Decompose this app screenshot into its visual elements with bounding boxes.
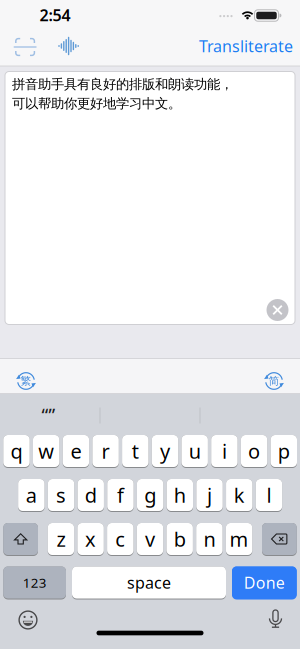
- button[interactable]: Delete: [262, 523, 297, 556]
- staticText: g: [144, 482, 156, 508]
- staticText: d: [85, 482, 97, 508]
- staticText: 123: [23, 574, 47, 591]
- staticText: s: [56, 482, 66, 508]
- button[interactable]: Scan text: [13, 36, 37, 58]
- button[interactable]: m: [226, 523, 252, 556]
- button[interactable]: Shift: [3, 523, 38, 556]
- button[interactable]: j: [196, 479, 223, 512]
- button[interactable]: 123: [3, 566, 66, 599]
- button[interactable]: Read aloud: [58, 35, 80, 57]
- button[interactable]: x: [77, 523, 104, 556]
- staticText: y: [160, 438, 170, 464]
- staticText: k: [234, 482, 245, 508]
- staticText: z: [56, 526, 65, 552]
- button[interactable]: n: [196, 523, 223, 556]
- staticText: u: [189, 438, 201, 464]
- staticText: q: [10, 438, 22, 464]
- button[interactable]: y: [152, 435, 178, 468]
- staticText: e: [70, 438, 81, 464]
- staticText: 繁: [20, 374, 31, 387]
- staticText: j: [207, 482, 212, 508]
- button[interactable]: s: [48, 479, 74, 512]
- staticText: “”: [41, 403, 55, 426]
- button[interactable]: o: [241, 435, 267, 468]
- staticText: l: [266, 482, 271, 508]
- button[interactable]: “”: [41, 403, 55, 426]
- staticText: r: [102, 438, 110, 464]
- button[interactable]: p: [271, 435, 297, 468]
- button[interactable]: w: [33, 435, 59, 468]
- staticText: n: [203, 526, 215, 552]
- button[interactable]: t: [122, 435, 148, 468]
- staticText: 拼音助手具有良好的排版和朗读功能， 可以帮助你更好地学习中文。: [12, 76, 233, 112]
- button[interactable]: a: [18, 479, 44, 512]
- staticText: m: [230, 526, 249, 552]
- staticText: v: [145, 526, 155, 552]
- button[interactable]: e: [63, 435, 89, 468]
- button[interactable]: Emoji: [17, 609, 38, 630]
- staticText: w: [38, 438, 54, 464]
- staticText: Done: [244, 572, 285, 593]
- button[interactable]: g: [137, 479, 163, 512]
- button[interactable]: Dictate: [268, 609, 282, 629]
- button[interactable]: i: [211, 435, 238, 468]
- staticText: f: [117, 482, 124, 508]
- staticText: o: [248, 438, 260, 464]
- button[interactable]: h: [167, 479, 193, 512]
- button[interactable]: c: [107, 523, 133, 556]
- button[interactable]: u: [181, 435, 208, 468]
- button[interactable]: q: [3, 435, 30, 468]
- button[interactable]: b: [166, 523, 193, 556]
- button[interactable]: Convert to Simplified: [261, 368, 287, 394]
- staticText: b: [174, 526, 186, 552]
- staticText: c: [115, 526, 125, 552]
- button[interactable]: v: [137, 523, 163, 556]
- button[interactable]: d: [77, 479, 104, 512]
- button[interactable]: z: [48, 523, 74, 556]
- staticText: t: [132, 438, 139, 464]
- staticText: x: [85, 526, 96, 552]
- staticText: p: [278, 438, 290, 464]
- button[interactable]: r: [92, 435, 119, 468]
- button[interactable]: Clear text: [266, 299, 288, 321]
- staticText: Transliterate: [199, 35, 293, 57]
- staticText: h: [174, 482, 186, 508]
- staticText: space: [127, 572, 171, 593]
- button[interactable]: Done: [232, 566, 297, 599]
- button[interactable]: Transliterate: [199, 35, 293, 57]
- staticText: 简: [268, 374, 279, 387]
- button[interactable]: l: [256, 479, 282, 512]
- button[interactable]: f: [107, 479, 134, 512]
- staticText: 2:54: [39, 4, 70, 26]
- button[interactable]: k: [226, 479, 252, 512]
- staticText: a: [26, 482, 37, 508]
- staticText: i: [222, 438, 227, 464]
- button[interactable]: Convert to Traditional: [13, 368, 39, 394]
- button[interactable]: space: [72, 566, 226, 599]
